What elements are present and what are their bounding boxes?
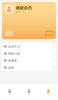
staticText: 超级会员 bbox=[16, 5, 32, 10]
button[interactable]: 会员中心 bbox=[2, 43, 56, 50]
button[interactable]: 发现 bbox=[19, 84, 39, 100]
button[interactable]: 我的订单 bbox=[2, 50, 56, 57]
staticText: 已省 128 元 bbox=[6, 33, 12, 35]
staticText: 我的 bbox=[47, 94, 49, 95]
button[interactable]: 设置 bbox=[2, 64, 56, 71]
staticText: 设置 bbox=[8, 66, 14, 69]
button[interactable]: 我的 bbox=[39, 84, 58, 100]
button[interactable]: 续费 bbox=[45, 31, 53, 36]
staticText: 会员中心 bbox=[8, 45, 20, 48]
button[interactable]: 优惠券 bbox=[2, 57, 56, 64]
staticText: 续费 bbox=[46, 32, 52, 35]
button[interactable]: 首页 bbox=[0, 84, 19, 100]
staticText: 优惠券 bbox=[8, 59, 17, 62]
staticText: 我的订单 bbox=[8, 52, 20, 55]
staticText: 有效期至 2024.12 bbox=[16, 11, 26, 13]
